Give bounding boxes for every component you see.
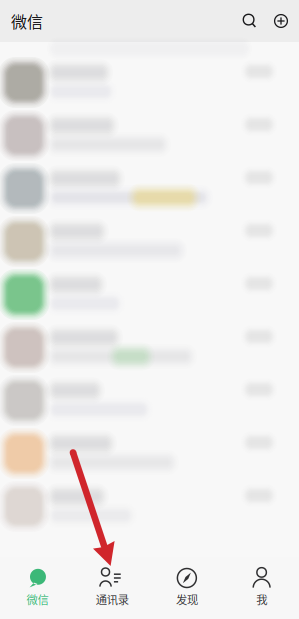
staticText: 通讯录	[96, 591, 129, 607]
button[interactable]: 我	[224, 557, 299, 619]
staticText: 我	[256, 591, 267, 607]
staticText: 发现	[176, 591, 198, 607]
button[interactable]: 搜索	[236, 6, 264, 36]
staticText: 微信	[11, 9, 43, 33]
button[interactable]: 添加	[267, 6, 295, 36]
button[interactable]: 通讯录	[75, 557, 150, 619]
staticText: 微信	[26, 591, 48, 607]
button[interactable]: 微信	[0, 557, 75, 619]
button[interactable]: 发现	[149, 557, 224, 619]
